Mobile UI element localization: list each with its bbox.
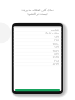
staticText: ۱۴۲ <box>54 45 59 48</box>
staticText: نمای كلی صفحه مدیریت <box>21 8 54 12</box>
staticText: لیست تراكنشها <box>27 12 48 16</box>
button[interactable]: ۳۵۷۱ <box>14 49 59 52</box>
staticText: ۵۴۷۲ <box>52 62 59 65</box>
button[interactable]: ۴۵۶ <box>14 38 59 41</box>
button[interactable]: شناسه <box>14 28 59 31</box>
staticText: ۸۲۴ <box>54 52 59 55</box>
button[interactable]: Device preview <box>12 23 63 94</box>
button[interactable]: ۱۲۳ <box>14 35 59 38</box>
button[interactable]: مبلغ و تاریخ <box>14 31 59 34</box>
staticText: ۹۱۳۵ <box>52 55 59 58</box>
button[interactable]: ۱۴۲ <box>14 45 59 48</box>
button[interactable]: ۲۶۸ <box>14 59 59 62</box>
staticText: مبلغ و تاریخ <box>45 31 59 34</box>
staticText: ۴۵۶ <box>54 38 59 41</box>
staticText: ۲۶۸ <box>54 59 59 62</box>
staticText: ۷۸۹۰ <box>52 42 59 45</box>
staticText: ۳۵۷۱ <box>52 49 59 52</box>
staticText: شناسه <box>50 28 59 31</box>
button[interactable]: ۵۴۷۲ <box>14 62 59 65</box>
button[interactable]: ۷۸۹۰ <box>14 42 59 45</box>
button[interactable]: ۹۱۳۵ <box>14 55 59 58</box>
button[interactable]: ۸۲۴ <box>14 52 59 55</box>
staticText: ۱۲۳ <box>54 35 59 38</box>
